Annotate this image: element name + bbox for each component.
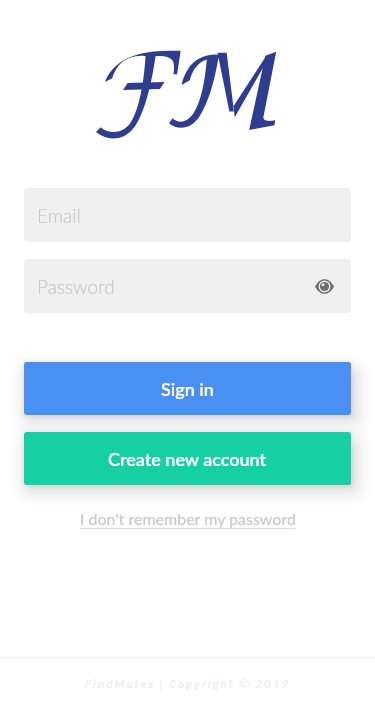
button[interactable]: I don't remember my password bbox=[76, 505, 300, 532]
staticText: FindMates | Copyright © 2019 bbox=[85, 676, 291, 690]
staticText: Create new account bbox=[108, 448, 267, 470]
button[interactable]: Password bbox=[24, 259, 351, 313]
button[interactable]: Show password bbox=[307, 269, 341, 303]
staticText: Email bbox=[37, 204, 81, 227]
button[interactable]: Create new account bbox=[24, 432, 351, 485]
button[interactable]: Sign in bbox=[24, 362, 351, 415]
staticText: Sign in bbox=[161, 378, 214, 400]
staticText: Password bbox=[37, 275, 115, 298]
